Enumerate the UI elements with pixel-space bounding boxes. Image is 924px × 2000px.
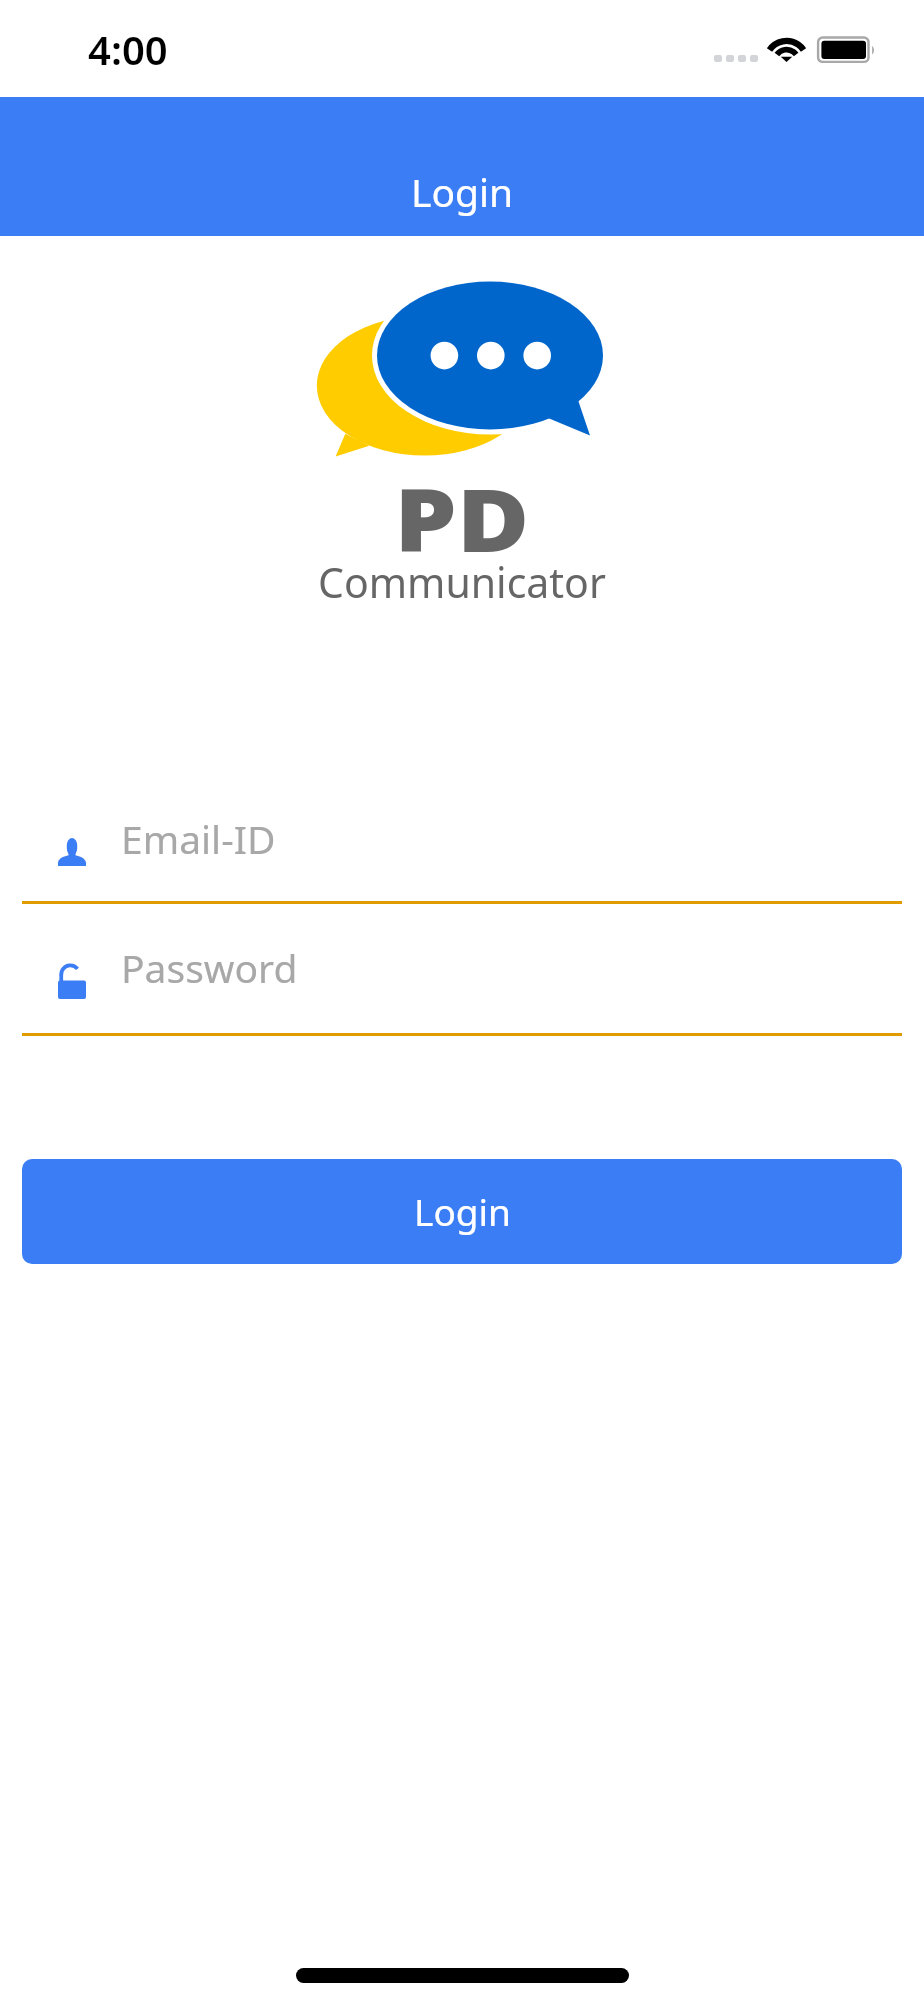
button[interactable]: Login	[22, 1159, 902, 1264]
staticText: Communicator	[318, 554, 606, 610]
other: Battery	[816, 36, 876, 64]
other: Password	[58, 967, 86, 999]
staticText: PD	[394, 460, 530, 577]
staticText: Login	[414, 1186, 511, 1236]
other: Wi-Fi	[768, 35, 805, 62]
other: Email address	[58, 838, 86, 866]
staticText: 4:00	[88, 22, 168, 76]
staticText: Login	[411, 165, 514, 218]
button[interactable]: Email address	[22, 818, 902, 904]
staticText: Password	[121, 941, 298, 994]
staticText: Email-ID	[121, 812, 276, 865]
button[interactable]: Password	[22, 947, 902, 1036]
